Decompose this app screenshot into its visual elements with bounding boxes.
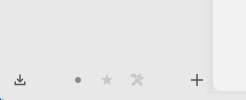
button[interactable]: Favourite	[95, 67, 119, 93]
button[interactable]: Status	[67, 67, 89, 93]
button[interactable]: Add	[184, 67, 210, 93]
button[interactable]: Download	[7, 67, 33, 93]
button[interactable]: Tools	[125, 67, 149, 93]
